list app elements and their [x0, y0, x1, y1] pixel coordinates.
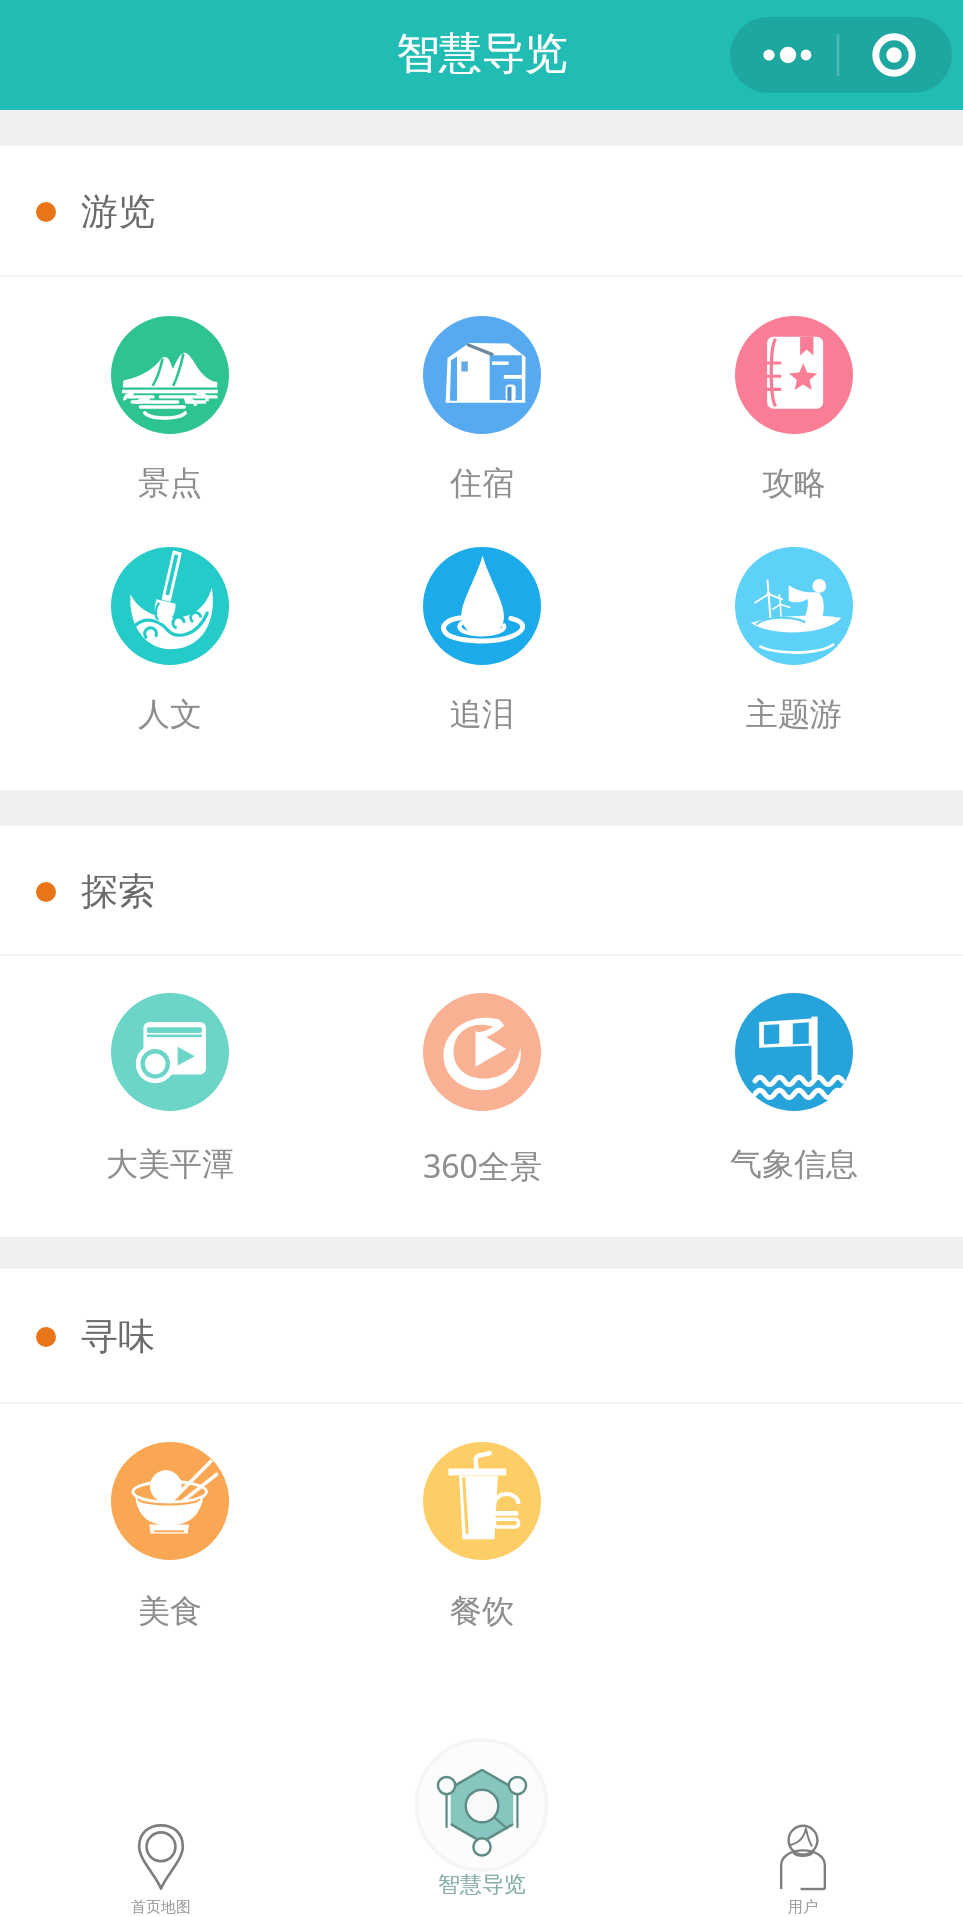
button[interactable]: 360全景: [326, 956, 638, 1187]
staticText: 360全景: [423, 1144, 542, 1187]
staticText: 气象信息: [730, 1144, 858, 1184]
button[interactable]: 主题游: [638, 508, 950, 739]
button[interactable]: 景点: [13, 277, 326, 508]
staticText: 游览: [81, 188, 155, 235]
staticText: 景点: [138, 463, 202, 503]
staticText: 美食: [138, 1591, 202, 1631]
button[interactable]: 更多: [730, 17, 952, 93]
button[interactable]: 餐饮: [326, 1404, 638, 1635]
button[interactable]: 气象信息: [638, 956, 950, 1187]
staticText: 住宿: [450, 463, 514, 503]
staticText: 寻味: [81, 1313, 155, 1360]
staticText: 人文: [138, 694, 202, 734]
button[interactable]: 追泪: [326, 508, 638, 739]
staticText: 大美平潭: [106, 1144, 234, 1184]
button[interactable]: 用户: [642, 1635, 963, 1917]
staticText: 主题游: [746, 694, 842, 734]
button[interactable]: 首页地图: [0, 1635, 321, 1917]
staticText: 首页地图: [131, 1898, 191, 1917]
button[interactable]: 住宿: [326, 277, 638, 508]
button[interactable]: 智慧导览: [321, 1635, 642, 1917]
staticText: 探索: [81, 868, 155, 915]
staticText: 用户: [788, 1898, 818, 1917]
button[interactable]: 人文: [13, 508, 326, 739]
staticText: 追泪: [450, 694, 514, 734]
button[interactable]: 美食: [13, 1404, 326, 1635]
staticText: 攻略: [762, 463, 826, 503]
staticText: 智慧导览: [396, 27, 568, 81]
staticText: 智慧导览: [438, 1871, 526, 1899]
staticText: 餐饮: [450, 1591, 514, 1631]
button[interactable]: 攻略: [638, 277, 950, 508]
button[interactable]: 大美平潭: [13, 956, 326, 1187]
